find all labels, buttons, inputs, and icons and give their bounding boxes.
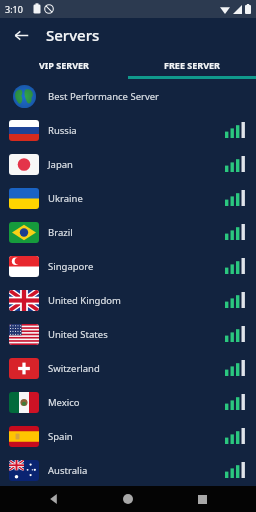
staticText: United Kingdom bbox=[48, 294, 121, 307]
staticText: Singapore bbox=[48, 260, 94, 273]
staticText: VIP SERVER bbox=[39, 59, 89, 71]
button[interactable]: United States bbox=[0, 317, 256, 351]
staticText: United States bbox=[48, 328, 108, 341]
button[interactable]: Australia bbox=[0, 453, 256, 487]
staticText: Brazil bbox=[48, 226, 73, 239]
staticText: FREE SERVER bbox=[164, 59, 220, 71]
staticText: Spain bbox=[48, 430, 73, 443]
button[interactable]: Recent apps bbox=[190, 487, 214, 511]
staticText: Australia bbox=[48, 464, 88, 477]
button[interactable]: Home bbox=[116, 487, 140, 511]
staticText: 3:10 bbox=[5, 3, 23, 15]
button[interactable]: Back bbox=[8, 22, 34, 48]
button[interactable]: Russia bbox=[0, 113, 256, 147]
staticText: Japan bbox=[48, 158, 73, 171]
button[interactable]: Ukraine bbox=[0, 181, 256, 215]
staticText: Servers bbox=[46, 25, 100, 45]
button[interactable]: FREE SERVER bbox=[128, 51, 256, 79]
staticText: Russia bbox=[48, 124, 77, 137]
button[interactable]: Japan bbox=[0, 147, 256, 181]
button[interactable]: Best Performance Server bbox=[0, 79, 256, 113]
button[interactable]: Back bbox=[42, 487, 66, 511]
button[interactable]: Mexico bbox=[0, 385, 256, 419]
button[interactable]: VIP SERVER bbox=[0, 51, 128, 79]
button[interactable]: Singapore bbox=[0, 249, 256, 283]
button[interactable]: United Kingdom bbox=[0, 283, 256, 317]
staticText: Ukraine bbox=[48, 192, 83, 205]
button[interactable]: Switzerland bbox=[0, 351, 256, 385]
staticText: Mexico bbox=[48, 396, 80, 409]
button[interactable]: Brazil bbox=[0, 215, 256, 249]
button[interactable]: Spain bbox=[0, 419, 256, 453]
staticText: Switzerland bbox=[48, 362, 100, 375]
staticText: Best Performance Server bbox=[48, 90, 160, 103]
